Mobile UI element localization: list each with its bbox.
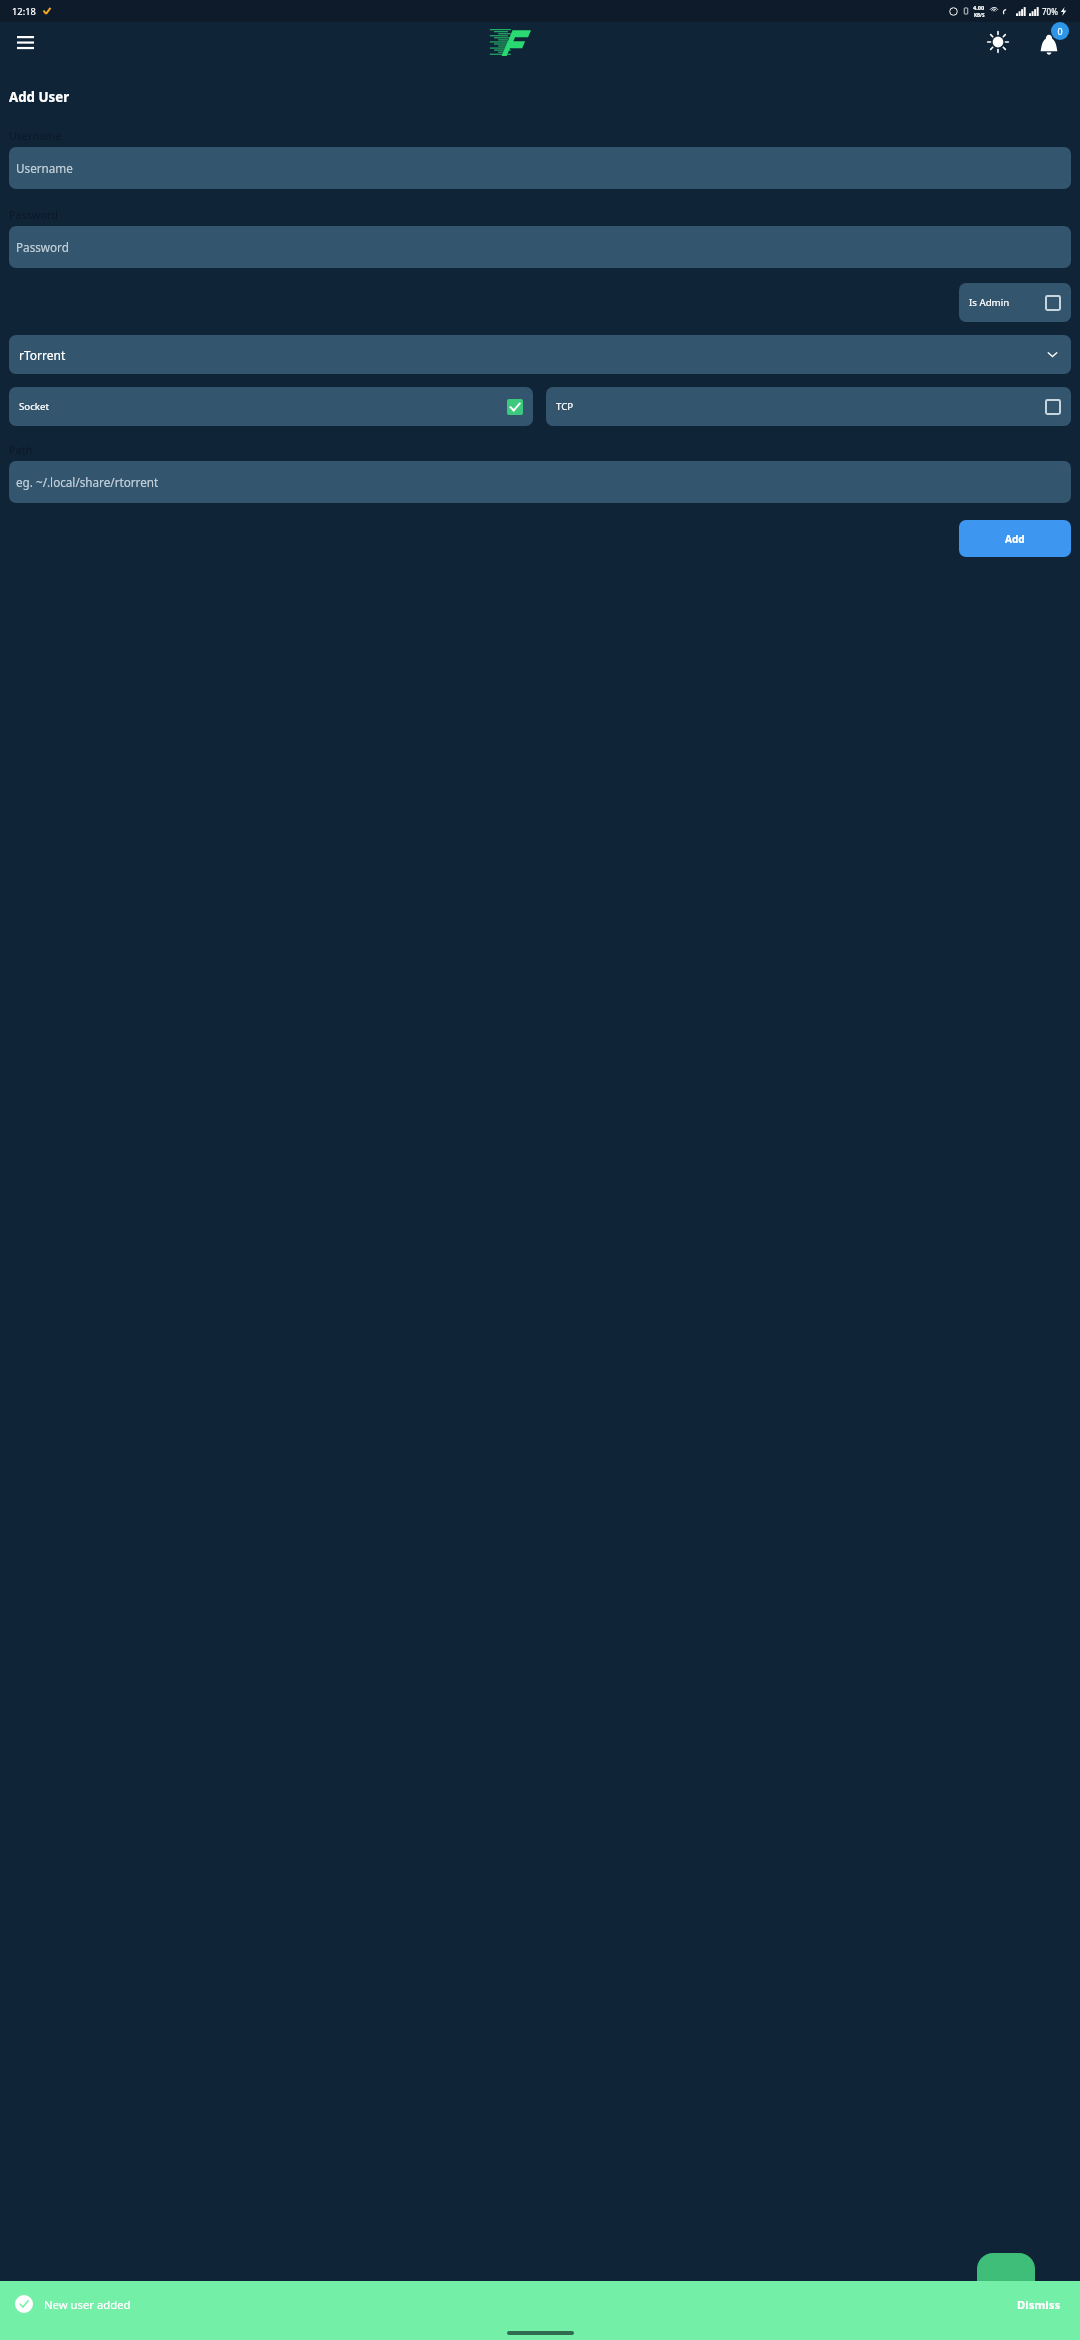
- button[interactable]: Add: [959, 520, 1071, 557]
- other: Expand: [1046, 348, 1059, 361]
- staticText: Path: [9, 442, 33, 457]
- staticText: Socket: [19, 400, 49, 413]
- staticText: TCP: [556, 400, 574, 413]
- staticText: 4.00: [973, 4, 985, 12]
- staticText: KB/S: [974, 12, 985, 18]
- staticText: Is Admin: [969, 296, 1010, 309]
- button[interactable]: TCP: [546, 387, 1071, 426]
- staticText: New user added: [44, 2297, 131, 2312]
- staticText: Dismiss: [1017, 2297, 1061, 2312]
- button[interactable]: rTorrent: [9, 335, 1071, 374]
- staticText: Username: [16, 160, 73, 176]
- button[interactable]: Username: [9, 147, 1071, 189]
- button[interactable]: Notifications: [1034, 27, 1064, 57]
- staticText: 12:18: [12, 5, 36, 18]
- button[interactable]: Menu: [13, 30, 37, 54]
- staticText: Add: [1005, 532, 1025, 546]
- button[interactable]: Dismiss: [1013, 2293, 1065, 2316]
- staticText: Username: [9, 128, 62, 143]
- button[interactable]: Add: [977, 2253, 1035, 2311]
- staticText: Password: [16, 239, 69, 255]
- button[interactable]: Is Admin: [959, 283, 1071, 322]
- staticText: 0: [1057, 25, 1063, 37]
- button[interactable]: eg. ~/.local/share/rtorrent: [9, 461, 1071, 503]
- staticText: rTorrent: [19, 347, 66, 363]
- staticText: eg. ~/.local/share/rtorrent: [16, 474, 159, 490]
- staticText: Password: [9, 207, 58, 222]
- button[interactable]: Password: [9, 226, 1071, 268]
- button[interactable]: Socket: [9, 387, 533, 426]
- staticText: 70%: [1042, 6, 1058, 17]
- staticText: Add User: [9, 88, 70, 106]
- button[interactable]: Theme: [984, 28, 1012, 56]
